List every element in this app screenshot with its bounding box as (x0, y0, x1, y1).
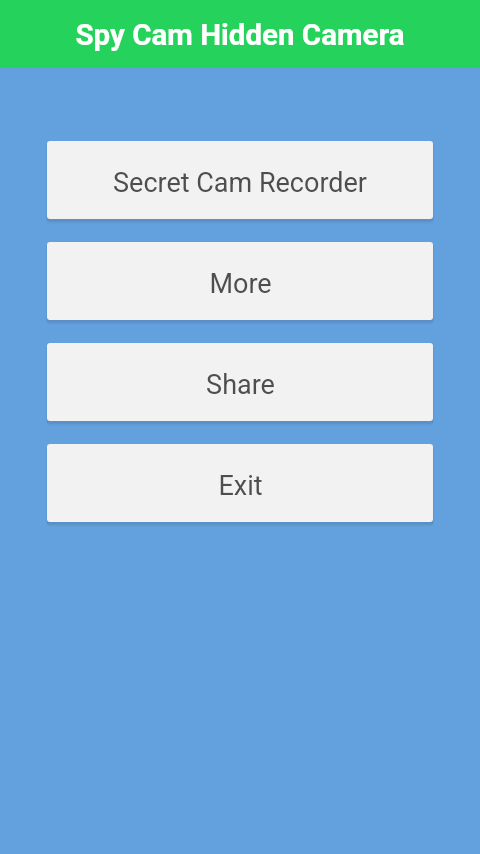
staticText: Exit (218, 470, 263, 502)
button[interactable]: Share (47, 343, 433, 421)
staticText: Spy Cam Hidden Camera (75, 18, 405, 53)
staticText: More (209, 268, 272, 300)
button[interactable]: More (47, 242, 433, 320)
button[interactable]: Exit (47, 444, 433, 522)
button[interactable]: Secret Cam Recorder (47, 141, 433, 219)
staticText: Share (206, 369, 275, 401)
staticText: Secret Cam Recorder (113, 167, 367, 199)
